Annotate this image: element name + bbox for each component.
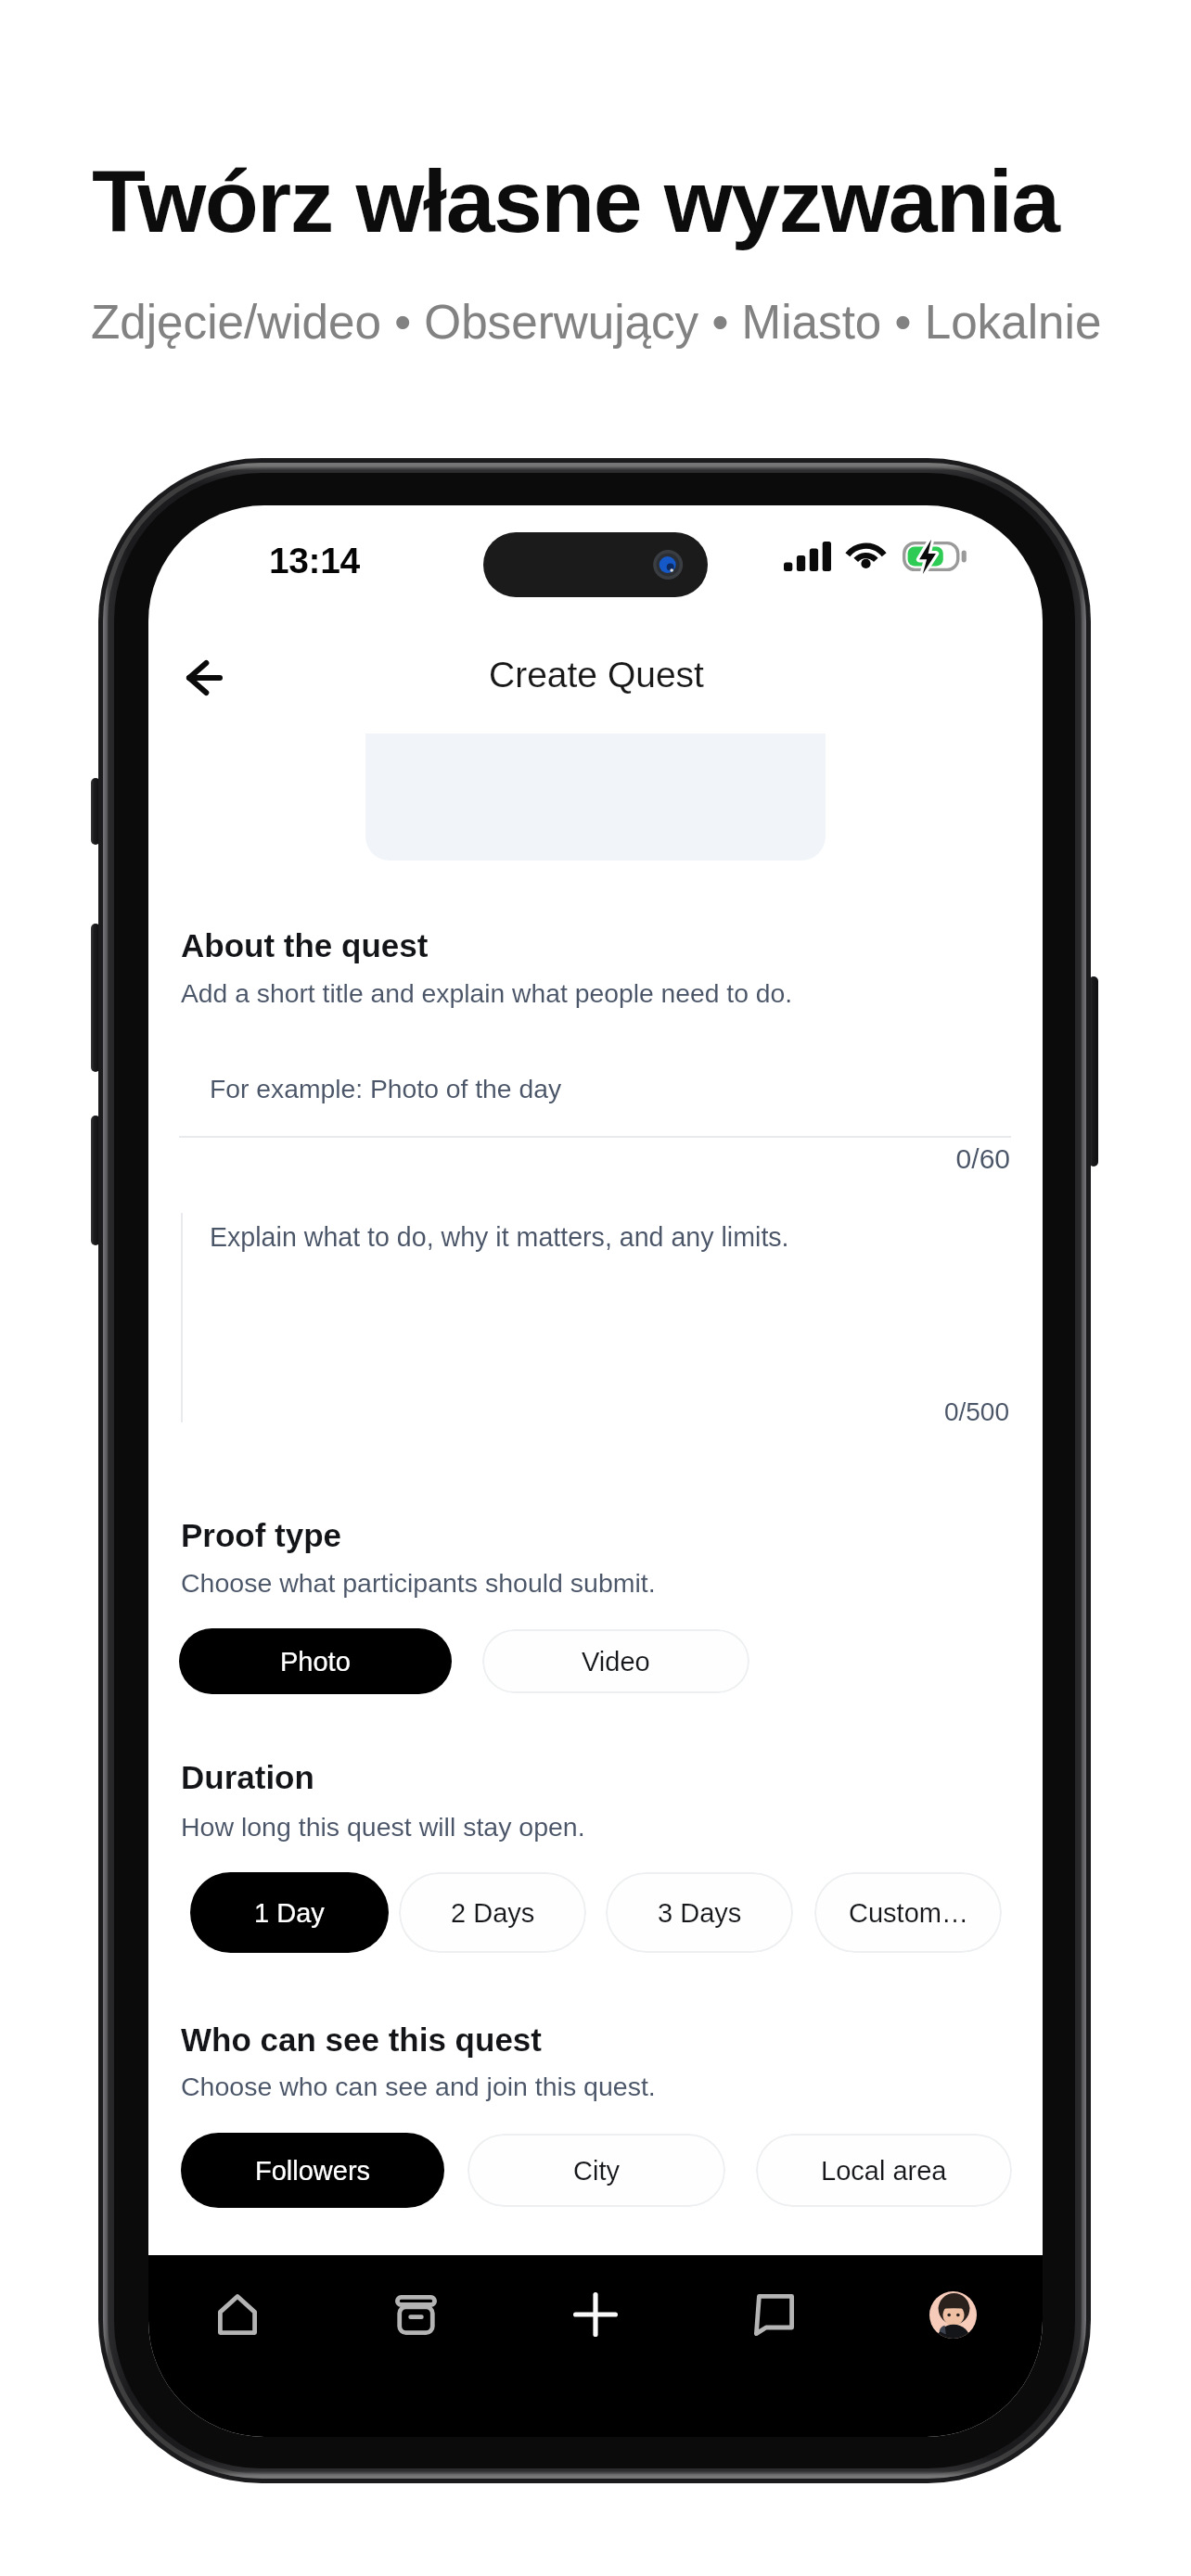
- button[interactable]: 3 Days: [606, 1872, 793, 1953]
- staticText: Duration: [181, 1759, 314, 1795]
- button[interactable]: Archive: [327, 2272, 506, 2357]
- button[interactable]: Photo: [179, 1628, 452, 1694]
- staticText: How long this quest will stay open.: [181, 1812, 585, 1842]
- button[interactable]: 2 Days: [399, 1872, 586, 1953]
- button[interactable]: Video: [482, 1629, 749, 1693]
- button[interactable]: Messages: [685, 2272, 864, 2357]
- staticText: Twórz własne wyzwania: [92, 152, 1059, 250]
- staticText: 2 Days: [451, 1898, 535, 1928]
- staticText: Choose what participants should submit.: [181, 1568, 656, 1598]
- button[interactable]: 1 Day: [190, 1872, 389, 1953]
- staticText: City: [573, 2156, 620, 2186]
- staticText: Add a short title and explain what peopl…: [181, 978, 793, 1008]
- staticText: 0/500: [148, 1397, 1009, 1426]
- staticText: 3 Days: [658, 1898, 742, 1928]
- button[interactable]: Custom…: [814, 1872, 1002, 1953]
- button[interactable]: Create: [506, 2272, 685, 2357]
- staticText: Custom…: [849, 1898, 968, 1928]
- staticText: Explain what to do, why it matters, and …: [210, 1222, 789, 1252]
- button[interactable]: City: [467, 2134, 725, 2207]
- staticText: Video: [582, 1647, 650, 1677]
- staticText: Choose who can see and join this quest.: [181, 2072, 656, 2101]
- button[interactable]: Local area: [756, 2134, 1012, 2207]
- staticText: Photo: [280, 1647, 351, 1677]
- button[interactable]: Followers: [181, 2133, 444, 2208]
- button[interactable]: Home: [148, 2272, 327, 2357]
- staticText: Who can see this quest: [181, 2021, 542, 2058]
- staticText: Local area: [821, 2156, 947, 2186]
- staticText: 1 Day: [254, 1898, 325, 1928]
- staticText: Followers: [255, 2156, 371, 2186]
- button[interactable]: Back: [160, 633, 249, 722]
- staticText: Proof type: [181, 1517, 342, 1553]
- staticText: For example: Photo of the day: [210, 1074, 562, 1103]
- staticText: Zdjęcie/wideo • Obserwujący • Miasto • L…: [91, 296, 1102, 349]
- staticText: 13:14: [269, 541, 360, 581]
- staticText: About the quest: [181, 927, 429, 963]
- button[interactable]: Profile: [929, 2291, 977, 2339]
- staticText: Create Quest: [489, 655, 704, 695]
- staticText: 0/60: [148, 1143, 1010, 1175]
